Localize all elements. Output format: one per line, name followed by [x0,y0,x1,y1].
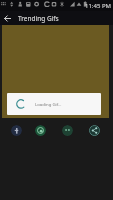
staticText: Trending Gifs [18,14,59,23]
button[interactable]: Share on Hike [62,125,73,136]
staticText: 11:45 PM [85,2,111,10]
button[interactable]: Back [1,12,14,25]
button[interactable]: Share on WhatsApp [35,125,46,136]
button[interactable]: Share [89,125,100,136]
button[interactable]: Share on Facebook [11,125,22,136]
staticText: Loading Gif... [35,101,62,107]
